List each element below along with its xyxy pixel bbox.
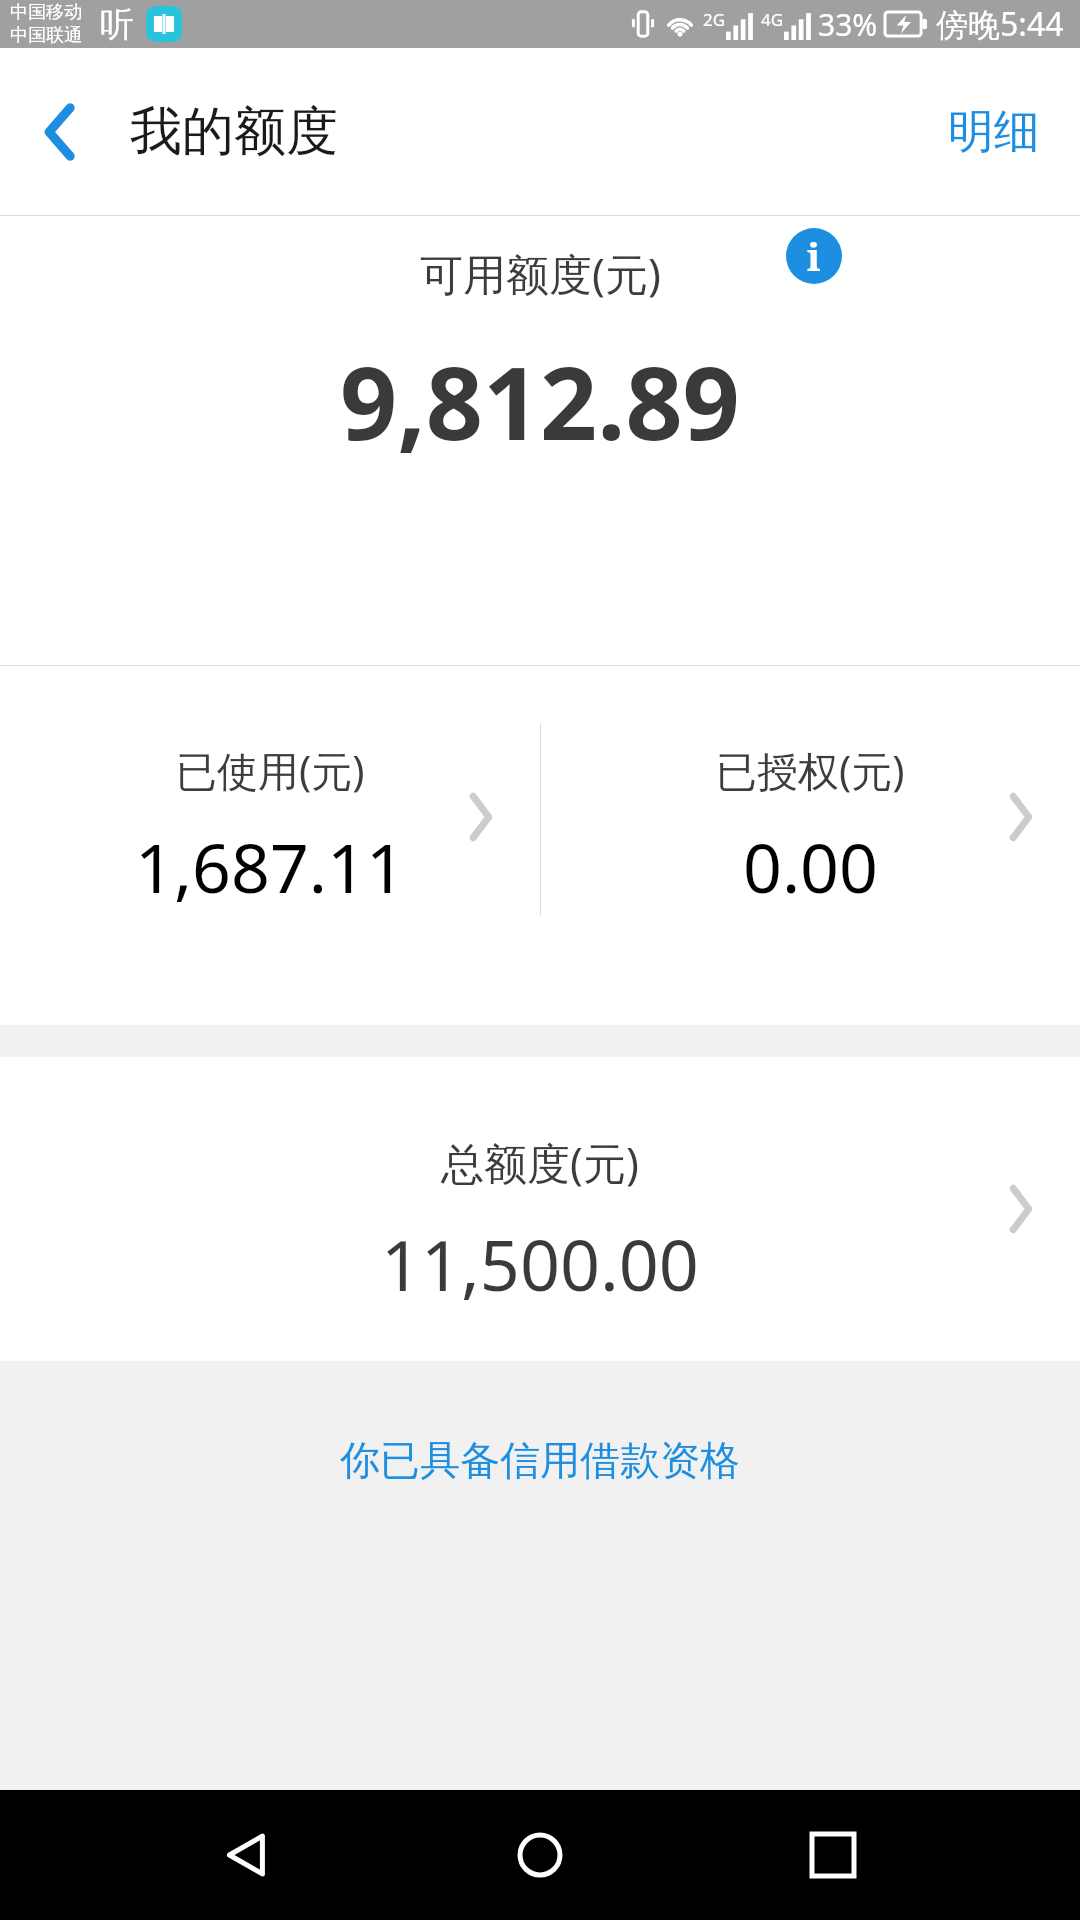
button[interactable]: 你已具备信用借款资格 xyxy=(0,1435,1080,1485)
staticText: 中国移动 xyxy=(10,1,82,24)
button[interactable]: 返回 xyxy=(201,1809,293,1901)
staticText: 明细 xyxy=(948,103,1040,161)
button[interactable]: 最近任务 xyxy=(787,1809,879,1901)
staticText: 傍晚5:44 xyxy=(936,2,1064,46)
staticText: 33% xyxy=(818,4,878,45)
button[interactable]: 主屏幕 xyxy=(494,1809,586,1901)
button[interactable]: 已授权(元) xyxy=(540,666,1080,1025)
staticText: 11,500.00 xyxy=(381,1216,699,1311)
button[interactable]: 返回 xyxy=(18,90,102,174)
staticText: 2G xyxy=(703,8,726,31)
staticText: 已授权(元) xyxy=(716,742,905,798)
staticText: 我的额度 xyxy=(130,99,338,165)
staticText: 听 xyxy=(100,3,134,46)
staticText: 中国联通 xyxy=(10,24,82,47)
staticText: 4G xyxy=(761,8,784,31)
staticText: 可用额度(元) xyxy=(420,244,661,303)
button[interactable]: 明细 xyxy=(938,91,1050,173)
staticText: 9,812.89 xyxy=(340,333,740,469)
staticText: 已使用(元) xyxy=(176,742,365,798)
button[interactable]: 额度说明 xyxy=(776,218,852,294)
staticText: 总额度(元) xyxy=(441,1133,639,1192)
button[interactable]: 已使用(元) xyxy=(0,666,540,1025)
staticText: 0.00 xyxy=(743,820,878,913)
staticText: i xyxy=(807,230,821,282)
staticText: 1,687.11 xyxy=(135,820,405,913)
button[interactable]: 总额度(元) xyxy=(0,1057,1080,1361)
